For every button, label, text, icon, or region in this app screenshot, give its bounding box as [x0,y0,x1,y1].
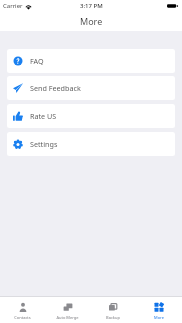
button[interactable]: Backup [90,297,136,323]
staticText: Settings [30,139,58,149]
staticText: Auto Merge [56,315,79,320]
staticText: More [80,15,103,27]
staticText: FAQ [30,56,44,66]
button[interactable]: Rate US [7,104,175,128]
staticText: Send Feedback [30,83,81,93]
staticText: Carrier [3,2,23,10]
button[interactable]: Send Feedback [7,76,175,100]
button[interactable]: FAQ [7,49,175,73]
staticText: Contacts [14,315,31,320]
button[interactable]: More [136,297,182,323]
staticText: Rate US [30,111,57,121]
button[interactable]: Auto Merge [45,297,90,323]
staticText: More [154,315,164,320]
button[interactable]: Settings [7,132,175,156]
staticText: Backup [106,315,120,320]
button[interactable]: Contacts [0,297,45,323]
staticText: 3:17 PM [80,2,103,10]
